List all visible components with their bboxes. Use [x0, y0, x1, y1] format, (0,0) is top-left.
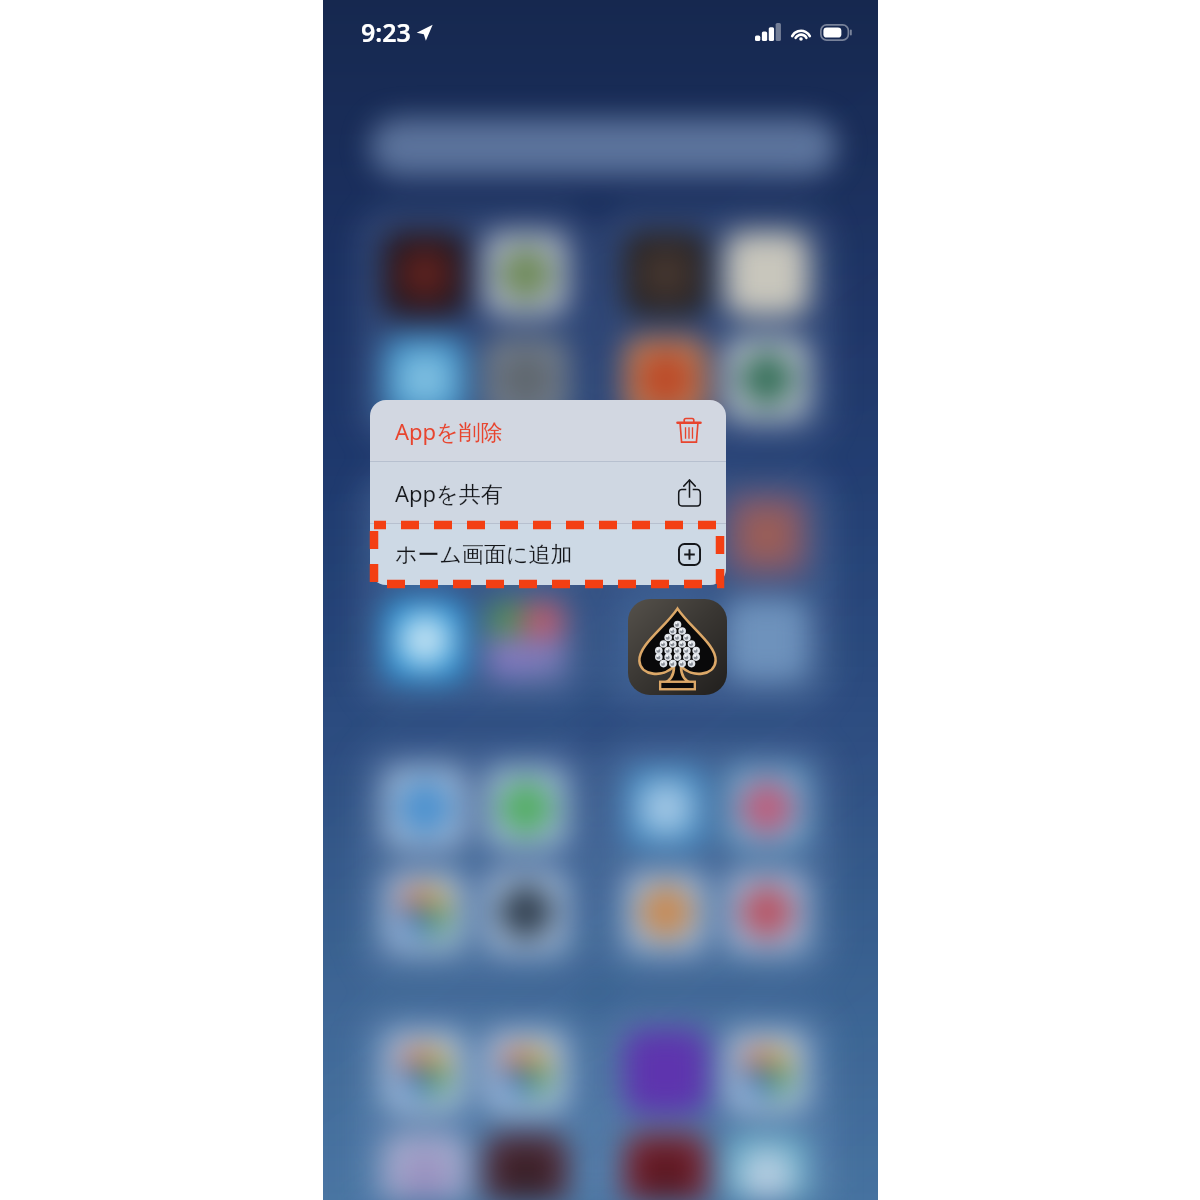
button[interactable]: Spades card game app — [628, 599, 727, 695]
button[interactable]: Appを削除 — [370, 400, 726, 461]
staticText: Appを共有 — [395, 478, 503, 508]
staticText: ホーム画面に追加 — [395, 541, 573, 569]
button[interactable]: Appを共有 — [370, 462, 726, 523]
staticText: Appを削除 — [395, 416, 503, 446]
staticText: 9:23 — [361, 15, 411, 49]
button[interactable]: ホーム画面に追加 — [370, 524, 726, 585]
button[interactable]: Add to Home Screen highlighted — [374, 525, 720, 584]
